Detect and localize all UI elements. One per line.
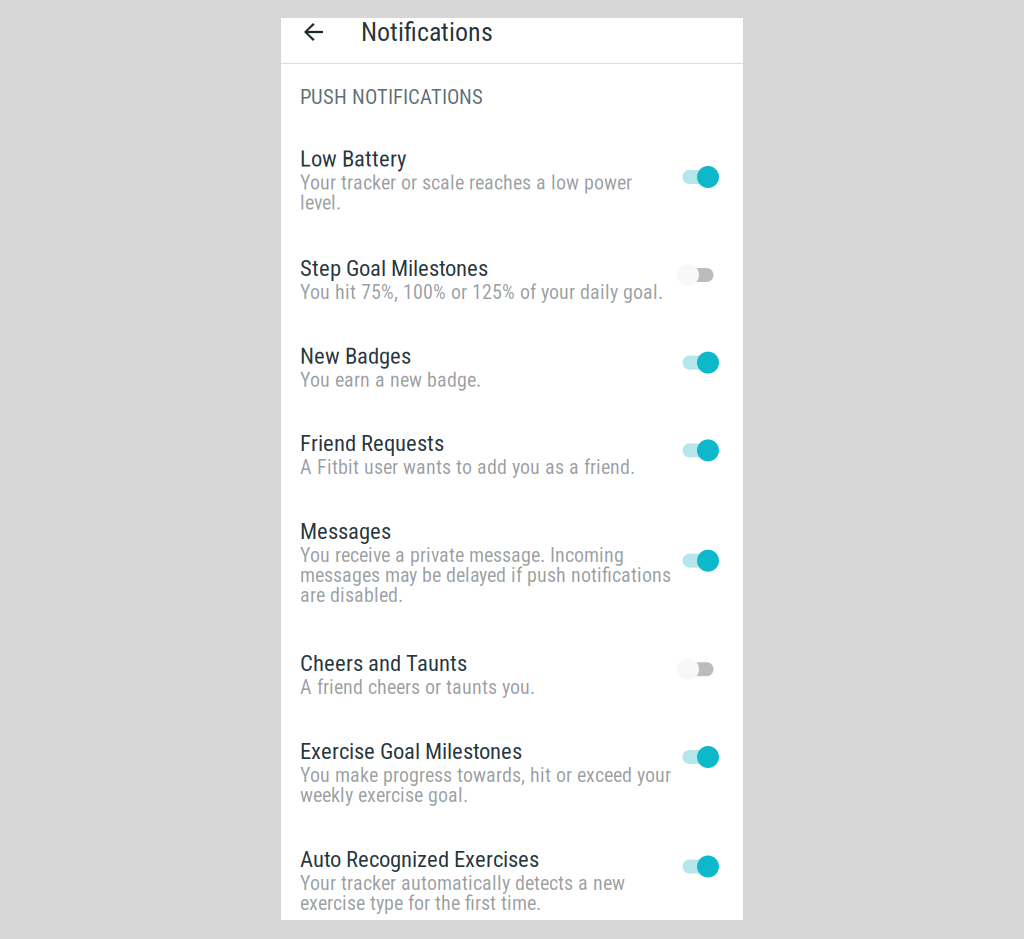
staticText: Your tracker automatically detects a new… — [300, 871, 625, 915]
button[interactable]: New Badges — [300, 343, 720, 388]
staticText: Friend Requests — [300, 430, 444, 457]
staticText: Cheers and Taunts — [300, 650, 467, 677]
button[interactable]: Auto Recognized Exercises — [300, 846, 720, 912]
staticText: New Badges — [300, 343, 411, 369]
staticText: Exercise Goal Milestones — [300, 738, 522, 765]
staticText: A Fitbit user wants to add you as a frie… — [300, 455, 635, 479]
staticText: Step Goal Milestones — [300, 255, 488, 282]
button[interactable]: Friend Requests — [300, 430, 720, 476]
staticText: PUSH NOTIFICATIONS — [300, 85, 483, 109]
staticText: You make progress towards, hit or exceed… — [300, 763, 671, 807]
button[interactable]: Exercise Goal Milestones — [300, 738, 720, 804]
staticText: Auto Recognized Exercises — [300, 846, 539, 873]
staticText: Your tracker or scale reaches a low powe… — [300, 171, 632, 214]
staticText: You hit 75%, 100% or 125% of your daily … — [300, 280, 663, 304]
staticText: Messages — [300, 518, 391, 545]
staticText: You receive a private message. Incoming … — [300, 543, 671, 607]
button[interactable]: Messages — [300, 518, 720, 604]
button[interactable]: Back — [291, 19, 337, 45]
staticText: You earn a new badge. — [300, 368, 481, 392]
staticText: Low Battery — [300, 145, 406, 172]
button[interactable]: Step Goal Milestones — [300, 255, 720, 301]
button[interactable]: Cheers and Taunts — [300, 650, 720, 696]
button[interactable]: Low Battery — [300, 145, 720, 211]
staticText: A friend cheers or taunts you. — [300, 675, 535, 699]
staticText: Notifications — [361, 17, 493, 47]
